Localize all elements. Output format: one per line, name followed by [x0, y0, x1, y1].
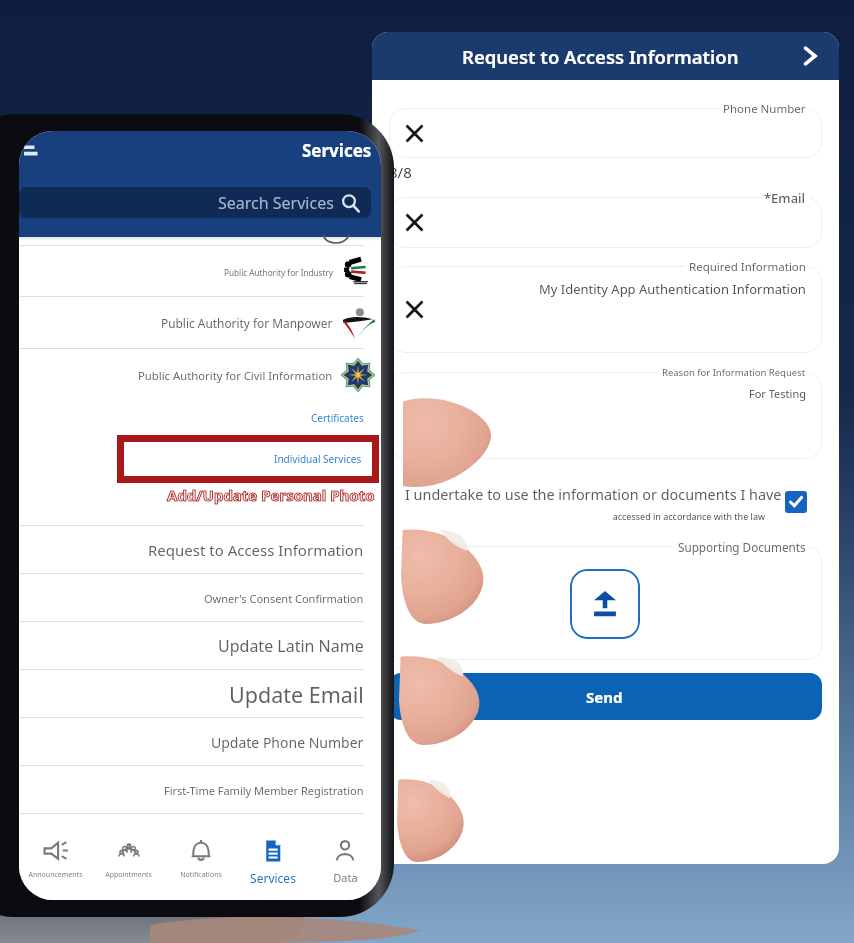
- staticText: Data: [333, 870, 358, 885]
- button[interactable]: Public Authority for Industry: [19, 246, 381, 297]
- staticText: My Identity App Authentication Informati…: [539, 280, 806, 298]
- button[interactable]: Search Services: [19, 187, 371, 218]
- button[interactable]: Services: [237, 825, 309, 886]
- button[interactable]: Individual Services: [117, 435, 379, 483]
- button[interactable]: Clear: [405, 213, 424, 232]
- button[interactable]: Update Email: [19, 670, 381, 718]
- button[interactable]: Update Phone Number: [19, 718, 381, 766]
- button[interactable]: Clear: [405, 124, 424, 143]
- button[interactable]: Notifications: [165, 825, 237, 880]
- staticText: Certificates: [311, 411, 364, 425]
- staticText: Update Email: [229, 680, 364, 709]
- staticText: Public Authority for Industry: [224, 267, 333, 278]
- button[interactable]: Upload document: [570, 569, 640, 639]
- staticText: Supporting Documents: [678, 539, 806, 555]
- staticText: First-Time Family Member Registration: [164, 783, 364, 798]
- staticText: Update Latin Name: [218, 635, 364, 657]
- button[interactable]: First-Time Family Member Registration: [19, 766, 381, 814]
- button[interactable]: Next: [796, 42, 824, 70]
- staticText: Services: [250, 870, 296, 886]
- button[interactable]: Public Authority for Manpower: [19, 297, 381, 349]
- staticText: I undertake to use the information or do…: [405, 485, 825, 505]
- button[interactable]: Announcements: [19, 825, 92, 880]
- staticText: Services: [302, 139, 372, 162]
- button[interactable]: Clear: [389, 108, 822, 158]
- staticText: Search Services: [218, 192, 334, 214]
- button[interactable]: Owner's Consent Confirmation: [19, 574, 381, 622]
- staticText: Add/Update Personal Photo: [167, 485, 375, 505]
- staticText: Request to Access Information: [148, 540, 364, 560]
- staticText: 8/8: [389, 162, 412, 182]
- button[interactable]: Menu: [23, 140, 45, 162]
- staticText: accessed in accordance with the law: [406, 510, 765, 522]
- button[interactable]: Request to Access Information: [19, 526, 381, 574]
- staticText: Update Phone Number: [211, 733, 364, 752]
- button[interactable]: My Identity App Authentication Informati…: [389, 266, 822, 353]
- button[interactable]: Public Authority for Civil Information: [19, 349, 381, 401]
- button[interactable]: Data: [309, 825, 381, 885]
- staticText: Notifications: [180, 870, 222, 880]
- staticText: Request to Access Information: [462, 44, 739, 69]
- staticText: Required Information: [689, 259, 806, 275]
- staticText: Phone Number: [723, 101, 806, 117]
- button[interactable]: Clear: [405, 300, 424, 319]
- staticText: Reason for Information Request: [662, 366, 806, 379]
- button[interactable]: Update Latin Name: [19, 622, 381, 670]
- staticText: For Testing: [749, 386, 806, 401]
- staticText: Individual Services: [274, 452, 362, 466]
- button[interactable]: Agree checkbox: [785, 491, 807, 513]
- staticText: Announcements: [28, 870, 83, 880]
- button[interactable]: For Testing: [389, 372, 822, 459]
- staticText: Appointments: [105, 870, 152, 880]
- staticText: Owner's Consent Confirmation: [204, 591, 364, 606]
- button[interactable]: Appointments: [92, 825, 165, 880]
- button[interactable]: Send: [389, 673, 822, 720]
- staticText: Public Authority for Manpower: [161, 315, 333, 331]
- staticText: Send: [586, 687, 623, 707]
- staticText: Public Authority for Civil Information: [138, 368, 333, 383]
- button[interactable]: Clear: [389, 197, 822, 248]
- staticText: *Email: [764, 189, 806, 207]
